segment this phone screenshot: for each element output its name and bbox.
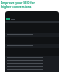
button[interactable] [5, 33, 59, 37]
button[interactable] [5, 44, 59, 48]
staticText: Improve your SEO for higher conversions [1, 1, 35, 9]
